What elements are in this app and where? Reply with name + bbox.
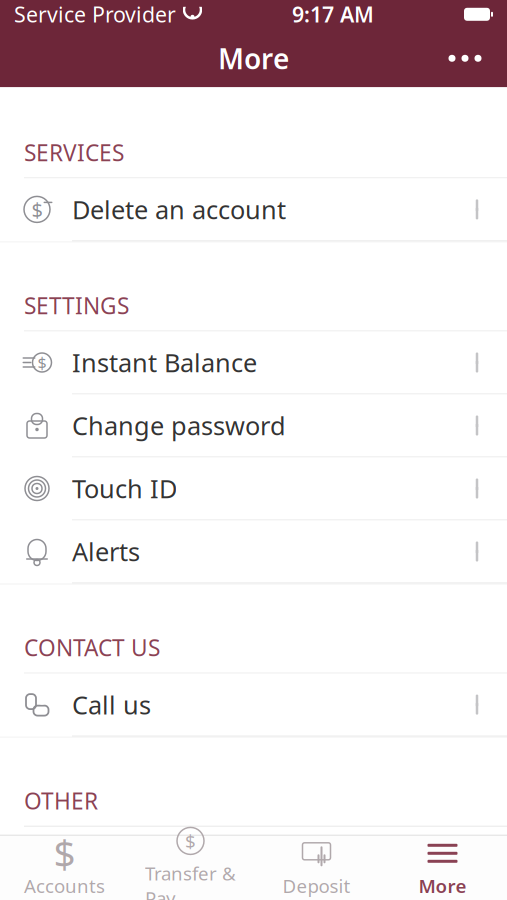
- staticText: Deposit: [282, 873, 350, 898]
- staticText: SERVICES: [24, 137, 124, 167]
- button[interactable]: More options: [435, 36, 495, 80]
- staticText: Touch ID: [72, 472, 177, 505]
- button[interactable]: Call us: [0, 674, 507, 736]
- staticText: Accounts: [24, 873, 105, 898]
- staticText: Instant Balance: [72, 346, 257, 379]
- staticText: 9:17 AM: [292, 0, 374, 28]
- button[interactable]: More: [379, 836, 505, 900]
- button[interactable]: $: [127, 836, 253, 900]
- staticText: Service Provider: [14, 0, 176, 28]
- staticText: More: [218, 40, 289, 77]
- button[interactable]: Alerts: [0, 520, 507, 582]
- staticText: $: [31, 196, 42, 223]
- staticText: Change password: [72, 409, 286, 442]
- staticText: Transfer & Pay: [145, 861, 236, 900]
- staticText: More: [418, 873, 466, 898]
- button[interactable]: $: [1, 836, 127, 900]
- staticText: $: [37, 352, 46, 373]
- button[interactable]: Touch ID: [0, 457, 507, 519]
- staticText: OTHER: [24, 786, 98, 816]
- button[interactable]: Change password: [0, 394, 507, 456]
- button[interactable]: $: [0, 178, 507, 240]
- button[interactable]: Deposit: [253, 836, 379, 900]
- staticText: $: [53, 828, 75, 879]
- staticText: SETTINGS: [24, 290, 129, 320]
- staticText: CONTACT US: [24, 632, 160, 663]
- button[interactable]: $: [0, 331, 507, 393]
- staticText: Call us: [72, 688, 151, 721]
- staticText: Alerts: [72, 535, 140, 568]
- staticText: Delete an account: [72, 193, 286, 226]
- staticText: $: [185, 828, 196, 853]
